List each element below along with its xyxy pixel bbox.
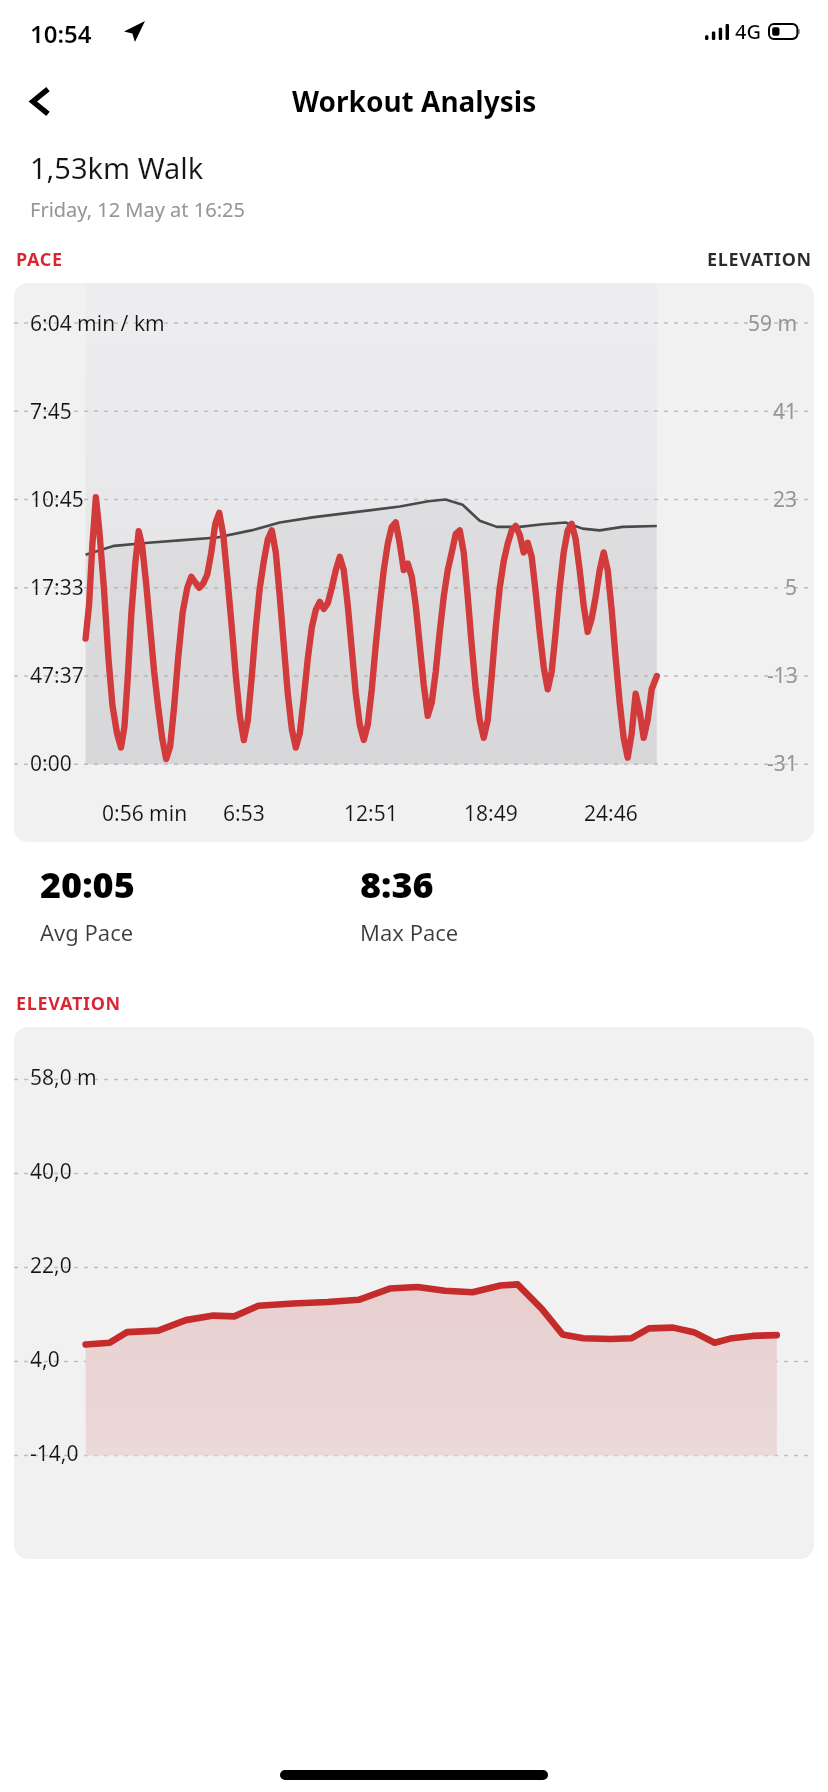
staticText: 24:46 <box>584 799 638 828</box>
staticText: -14,0 <box>30 1439 79 1468</box>
staticText: 0:00 <box>30 749 72 778</box>
staticText: Avg Pace <box>40 917 134 947</box>
staticText: 0:56 min <box>102 799 188 828</box>
staticText: 41 <box>773 397 798 426</box>
staticText: Workout Analysis <box>292 82 537 120</box>
button[interactable]: 58,0 m <box>14 1027 814 1559</box>
staticText: 7:45 <box>30 397 72 426</box>
button[interactable]: 8:36 <box>360 860 828 947</box>
staticText: Friday, 12 May at 16:25 <box>30 196 245 223</box>
staticText: 6:04 min / km <box>30 309 165 338</box>
staticText: 4G <box>735 18 761 45</box>
staticText: 6:53 <box>223 799 265 828</box>
staticText: 10:54 <box>30 17 92 50</box>
staticText: 5 <box>785 573 798 602</box>
staticText: 18:49 <box>464 799 518 828</box>
staticText: 1,53km Walk <box>30 148 204 187</box>
staticText: 8:36 <box>360 860 434 909</box>
staticText: 59 m <box>748 309 798 338</box>
staticText: 4,0 <box>30 1345 60 1374</box>
staticText: ELEVATION <box>707 247 812 272</box>
staticText: 40,0 <box>30 1157 72 1186</box>
staticText: -13 <box>767 661 798 690</box>
button[interactable]: Back <box>12 72 70 130</box>
staticText: 58,0 m <box>30 1063 97 1092</box>
staticText: PACE <box>16 247 63 272</box>
staticText: 10:45 <box>30 485 84 514</box>
staticText: ELEVATION <box>16 991 121 1016</box>
staticText: 20:05 <box>40 860 135 909</box>
staticText: -31 <box>767 749 798 778</box>
staticText: 17:33 <box>30 573 84 602</box>
staticText: 22,0 <box>30 1251 72 1280</box>
staticText: Max Pace <box>360 917 459 947</box>
staticText: 47:37 <box>30 661 84 690</box>
button[interactable]: 6:04 min / km <box>14 283 814 842</box>
staticText: 23 <box>773 485 798 514</box>
button[interactable]: 20:05 <box>40 860 360 947</box>
staticText: 12:51 <box>344 799 398 828</box>
